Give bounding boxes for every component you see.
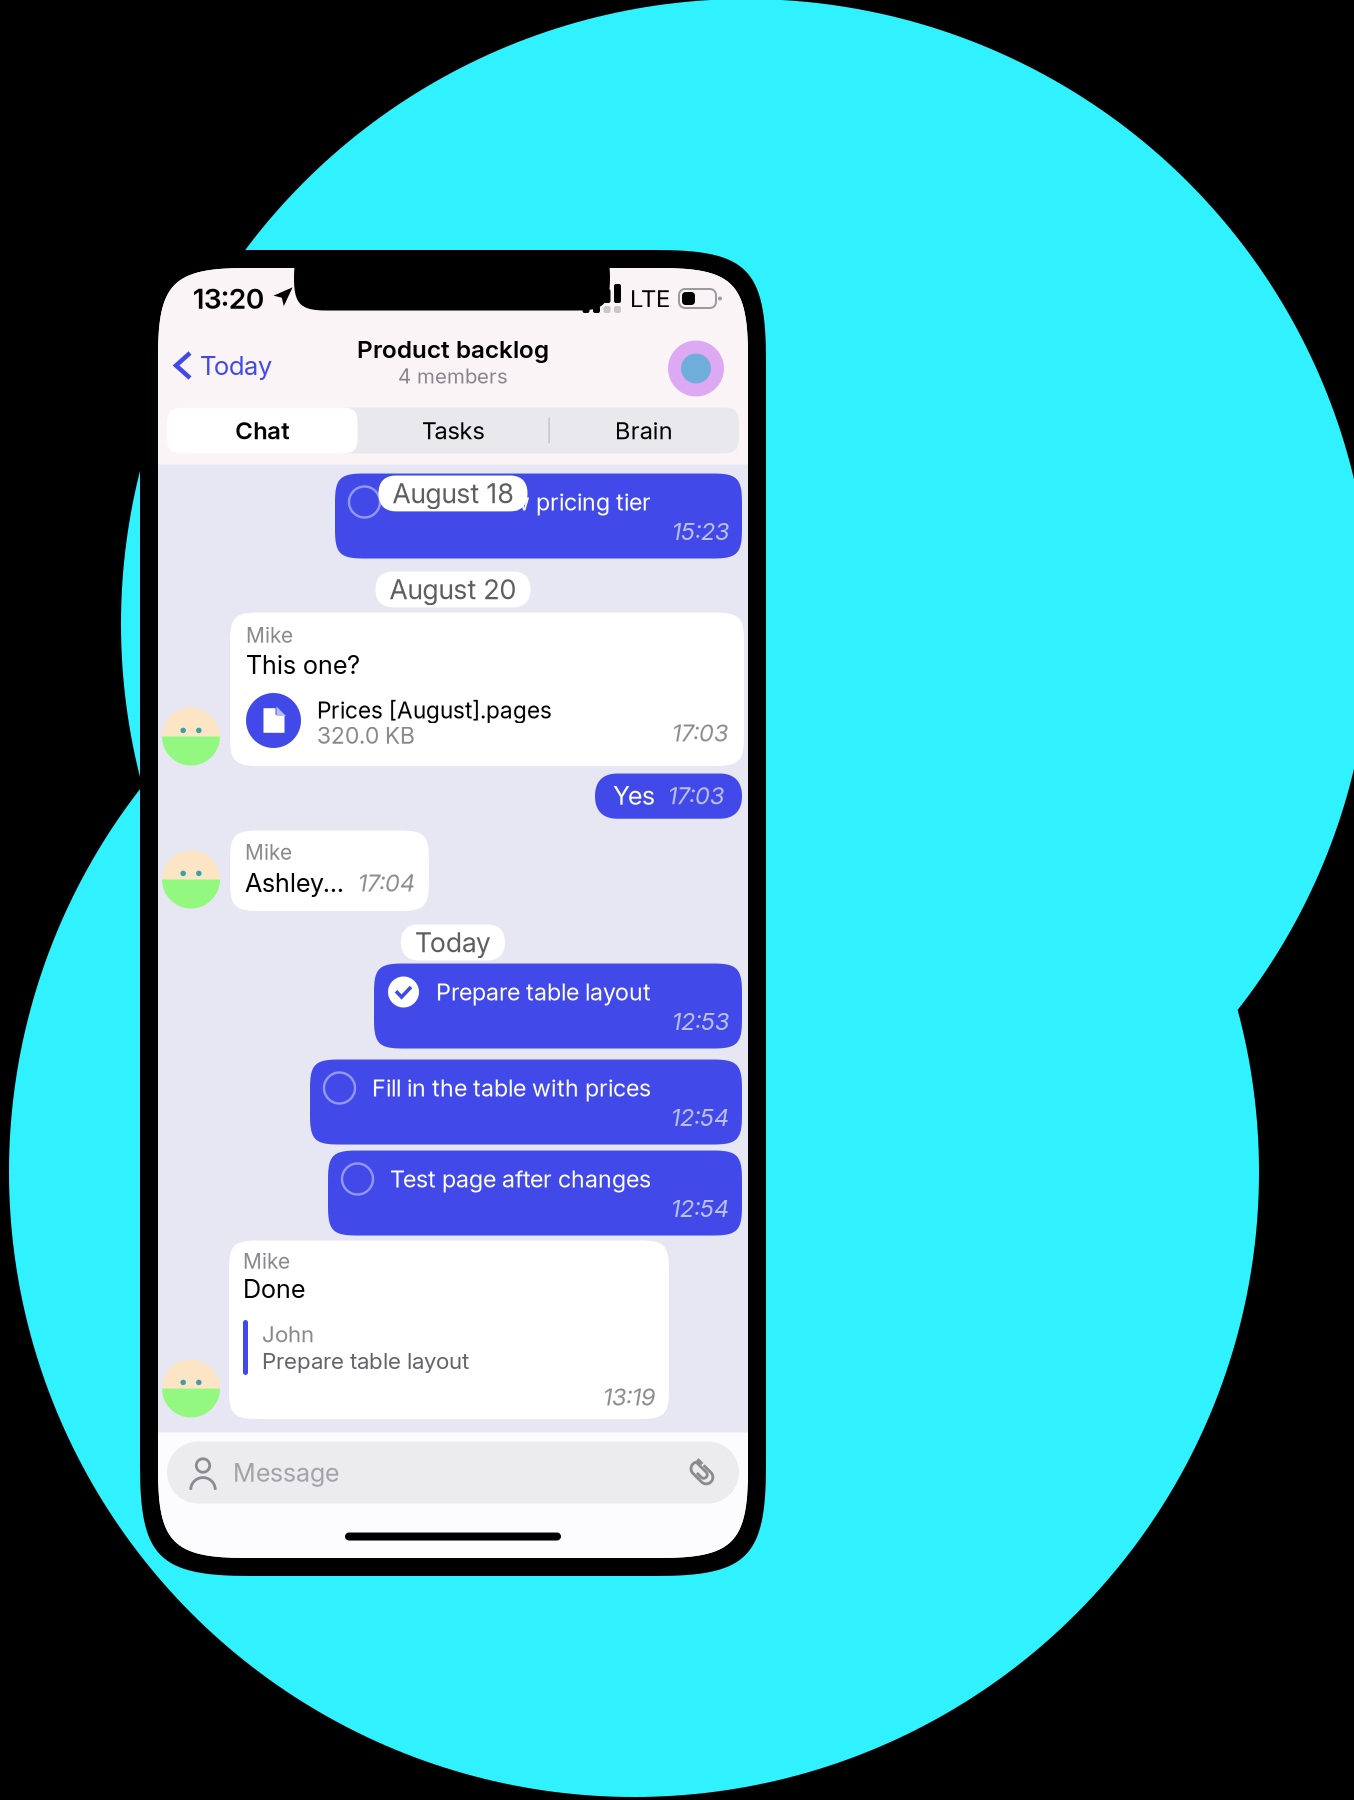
button[interactable]: Mike xyxy=(230,612,744,766)
staticText: Prepare table layout xyxy=(436,979,651,1005)
staticText: August 18 xyxy=(392,478,513,508)
staticText: Today xyxy=(415,927,491,957)
staticText: 13:19 xyxy=(603,1384,655,1410)
button[interactable]: Mike xyxy=(230,830,429,911)
staticText: 12:53 xyxy=(672,1008,729,1034)
button[interactable]: Prepare table layout xyxy=(374,963,742,1048)
button[interactable]: Tasks xyxy=(358,407,548,453)
button[interactable]: Group members xyxy=(668,340,748,396)
staticText: LTE xyxy=(630,285,670,312)
button[interactable]: Chat xyxy=(167,407,358,453)
staticText: 17:03 xyxy=(668,783,724,809)
staticText: John xyxy=(262,1322,314,1346)
staticText: Mike xyxy=(243,1249,290,1273)
staticText: Prepare table layout xyxy=(262,1348,469,1373)
staticText: Mike xyxy=(246,623,293,647)
staticText: Ashley... xyxy=(245,869,344,897)
staticText: 320.0 KB xyxy=(317,723,415,748)
staticText: 17:03 xyxy=(672,720,728,746)
staticText: 15:23 xyxy=(672,518,729,544)
staticText: 13:20 xyxy=(193,283,264,314)
staticText: Yes xyxy=(613,781,655,810)
staticText: Launch new pricing tier xyxy=(397,489,651,515)
staticText: Mike xyxy=(245,840,292,864)
button[interactable]: Yes xyxy=(595,773,742,819)
staticText: Tasks xyxy=(421,417,484,444)
staticText: Brain xyxy=(615,417,673,444)
staticText: Done xyxy=(243,1275,305,1303)
staticText: This one? xyxy=(246,651,360,679)
staticText: 12:54 xyxy=(671,1195,729,1221)
staticText: Prices [August].pages xyxy=(317,697,552,723)
button[interactable]: Launch new pricing tier xyxy=(335,473,742,558)
staticText: Product backlog xyxy=(357,336,549,363)
staticText: Today xyxy=(200,351,272,380)
staticText: Fill in the table with prices xyxy=(372,1075,651,1101)
button[interactable]: Today xyxy=(158,344,282,393)
staticText: Message xyxy=(233,1458,339,1487)
staticText: Test page after changes xyxy=(390,1166,651,1192)
button[interactable]: Brain xyxy=(548,407,739,453)
staticText: 17:04 xyxy=(358,870,415,896)
staticText: August 20 xyxy=(389,574,516,604)
staticText: 4 members xyxy=(398,365,508,387)
button[interactable]: Message xyxy=(158,1432,748,1503)
staticText: 12:54 xyxy=(671,1104,729,1130)
button[interactable]: Mike xyxy=(229,1240,669,1419)
button[interactable]: Test page after changes xyxy=(328,1150,742,1235)
button[interactable]: Fill in the table with prices xyxy=(310,1059,742,1144)
staticText: Chat xyxy=(235,417,289,444)
